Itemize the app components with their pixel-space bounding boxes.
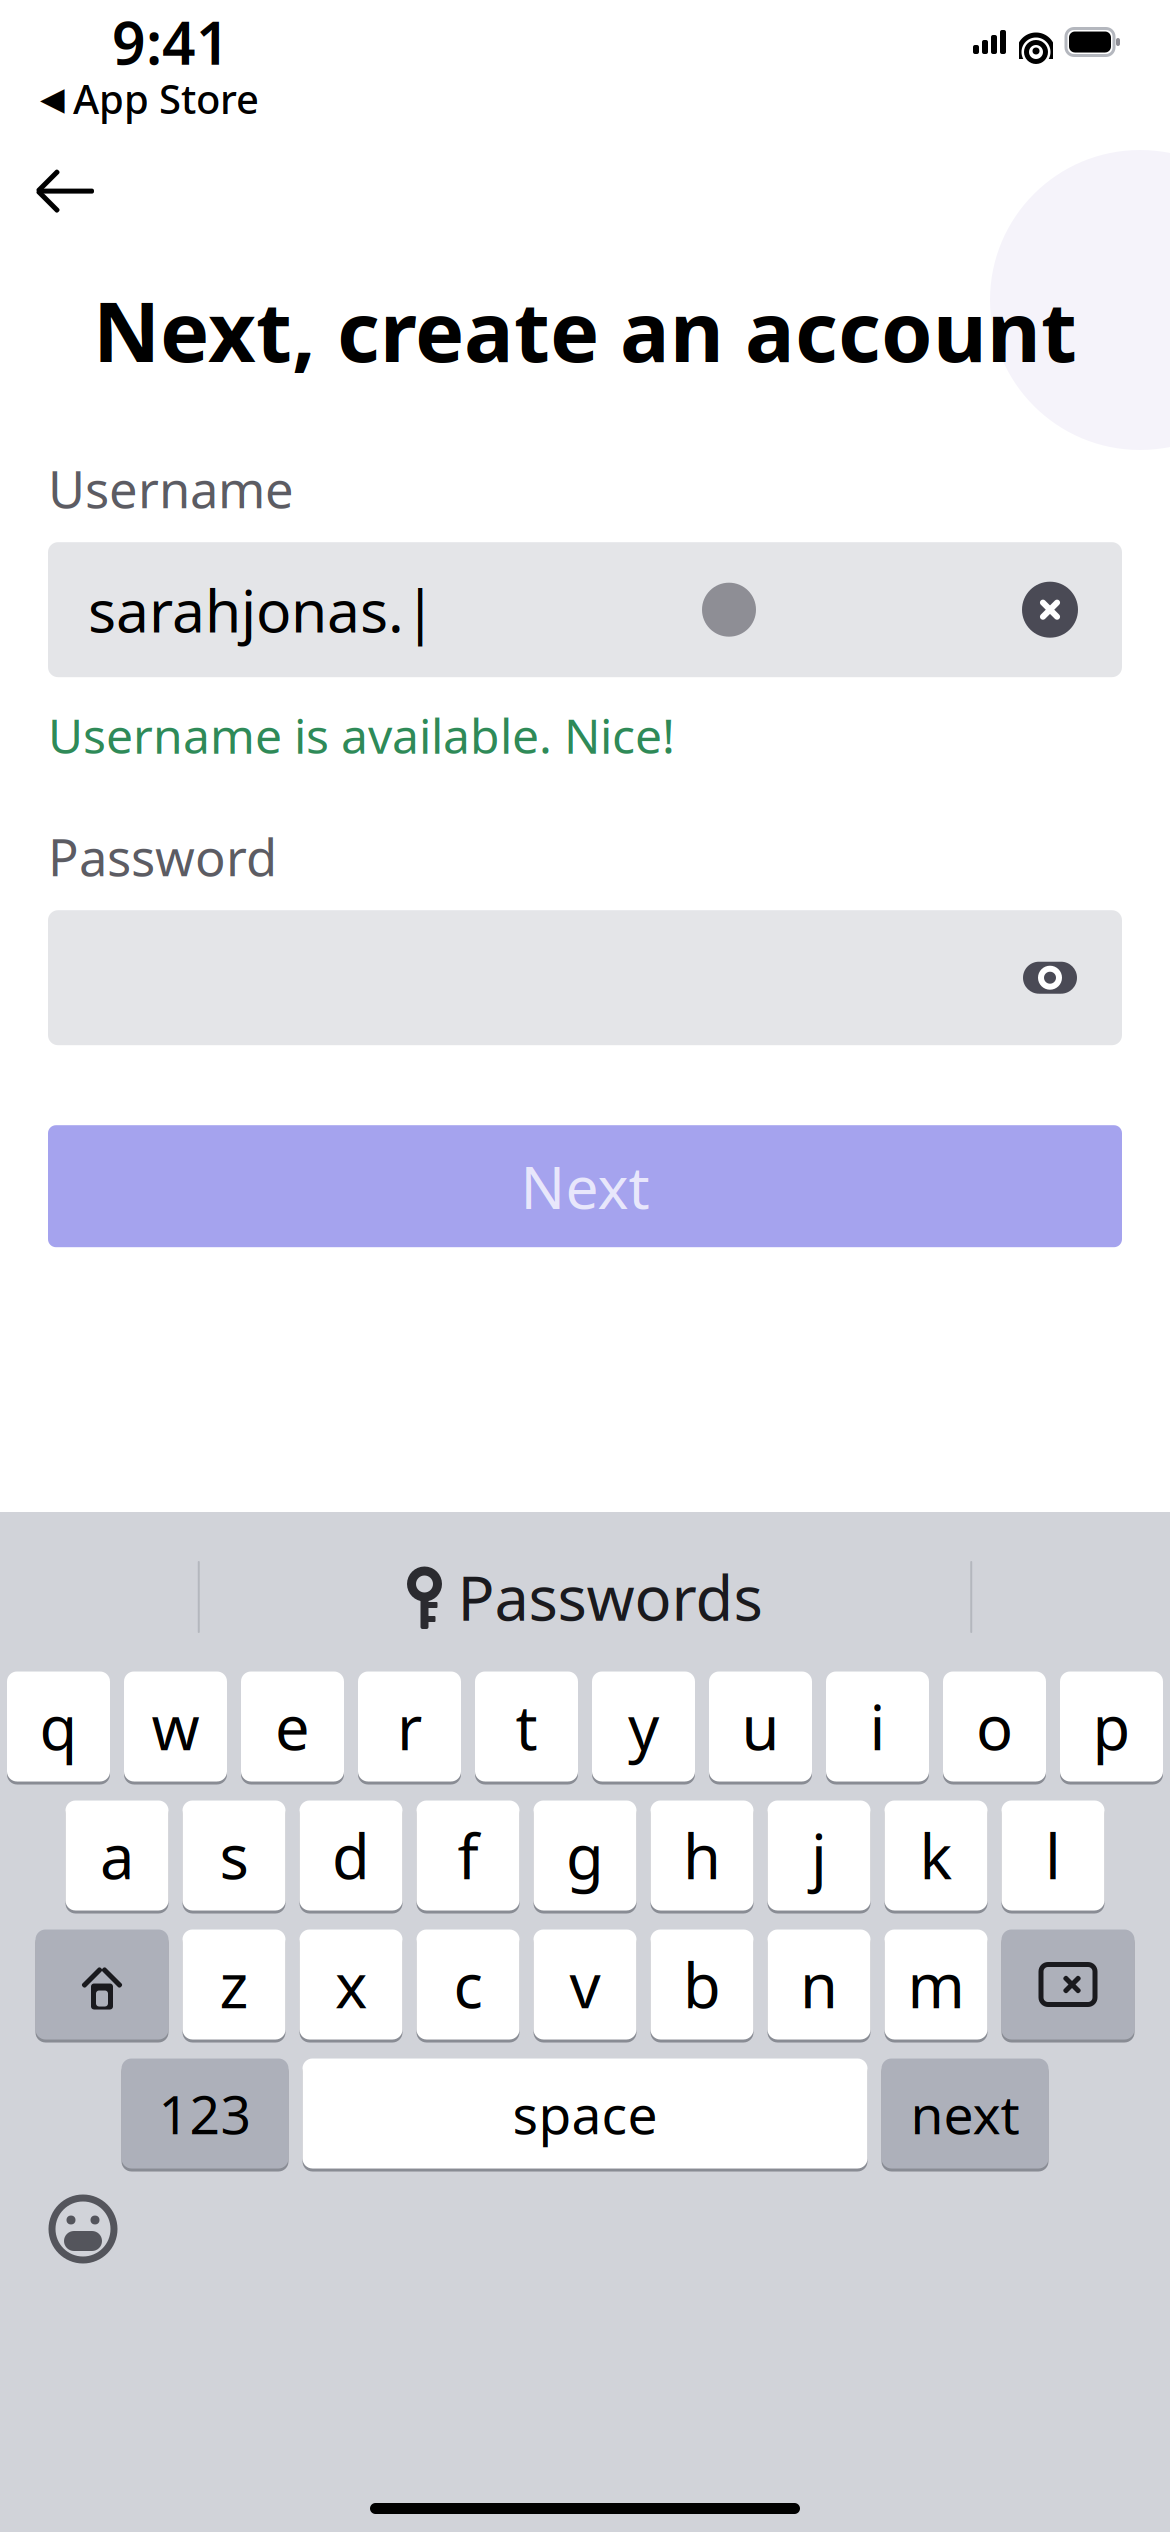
button[interactable]: d	[299, 1799, 402, 1912]
button[interactable]: 123	[121, 2057, 288, 2170]
button[interactable]: l	[1001, 1799, 1104, 1912]
staticText: n	[800, 1944, 838, 2025]
button[interactable]: Passwords	[397, 1556, 772, 1638]
button[interactable]: Delete	[1001, 1928, 1134, 2041]
button[interactable]: n	[767, 1928, 870, 2041]
button[interactable]: g	[533, 1799, 636, 1912]
staticText: r	[397, 1686, 422, 1767]
button[interactable]: next	[881, 2057, 1048, 2170]
staticText: g	[566, 1815, 604, 1896]
staticText: o	[976, 1686, 1013, 1767]
button[interactable]: space	[302, 2057, 867, 2170]
staticText: u	[741, 1686, 779, 1767]
button[interactable]: i	[826, 1670, 929, 1783]
staticText: ◀	[40, 80, 65, 117]
button[interactable]: p	[1060, 1670, 1163, 1783]
button[interactable]: Next	[48, 1125, 1122, 1247]
staticText: w	[151, 1686, 199, 1767]
staticText: Next	[520, 1147, 649, 1225]
button[interactable]: Show password	[1022, 958, 1122, 998]
staticText: next	[910, 2078, 1019, 2149]
staticText: v	[569, 1944, 600, 2025]
staticText: q	[39, 1686, 77, 1767]
button[interactable]: c	[416, 1928, 519, 2041]
button[interactable]: t	[475, 1670, 578, 1783]
button[interactable]: Shift	[35, 1928, 168, 2041]
button[interactable]: y	[592, 1670, 695, 1783]
button[interactable]: k	[884, 1799, 987, 1912]
staticText: t	[515, 1686, 537, 1767]
button[interactable]: x	[299, 1928, 402, 2041]
staticText: s	[219, 1815, 248, 1896]
staticText: j	[811, 1815, 827, 1896]
staticText: h	[683, 1815, 721, 1896]
staticText: Username is available. Nice!	[48, 703, 675, 767]
button[interactable]: w	[124, 1670, 227, 1783]
button[interactable]: b	[650, 1928, 753, 2041]
button[interactable]: v	[533, 1928, 636, 2041]
staticText: z	[219, 1944, 248, 2025]
staticText: 123	[158, 2078, 251, 2149]
staticText: l	[1045, 1815, 1061, 1896]
staticText: i	[869, 1686, 885, 1767]
button[interactable]: Back	[0, 149, 98, 233]
staticText: Username	[48, 455, 294, 522]
staticText: Passwords	[457, 1556, 762, 1638]
staticText: space	[512, 2078, 657, 2149]
button[interactable]: o	[943, 1670, 1046, 1783]
staticText: f	[457, 1815, 478, 1896]
staticText: x	[335, 1944, 367, 2025]
staticText: App Store	[73, 72, 259, 125]
staticText: sarahjonas.|	[88, 571, 436, 649]
button[interactable]: Emoji	[48, 2194, 118, 2264]
button[interactable]: m	[884, 1928, 987, 2041]
staticText: e	[275, 1686, 310, 1767]
staticText: 9:41	[112, 3, 230, 81]
button[interactable]: h	[650, 1799, 753, 1912]
button[interactable]: r	[358, 1670, 461, 1783]
button[interactable]: q	[7, 1670, 110, 1783]
staticText: Next, create an account	[93, 275, 1077, 385]
button[interactable]: s	[182, 1799, 285, 1912]
staticText: a	[100, 1815, 134, 1896]
button[interactable]: Clear text	[1022, 582, 1078, 638]
staticText: k	[919, 1815, 952, 1896]
button[interactable]: j	[767, 1799, 870, 1912]
staticText: m	[907, 1944, 964, 2025]
button[interactable]: z	[182, 1928, 285, 2041]
staticText: b	[683, 1944, 721, 2025]
staticText: p	[1092, 1686, 1130, 1767]
button[interactable]: a	[65, 1799, 168, 1912]
staticText: y	[628, 1686, 659, 1767]
button[interactable]: u	[709, 1670, 812, 1783]
staticText: c	[453, 1944, 482, 2025]
staticText: Password	[48, 823, 277, 890]
staticText: d	[332, 1815, 370, 1896]
button[interactable]: e	[241, 1670, 344, 1783]
button[interactable]: f	[416, 1799, 519, 1912]
